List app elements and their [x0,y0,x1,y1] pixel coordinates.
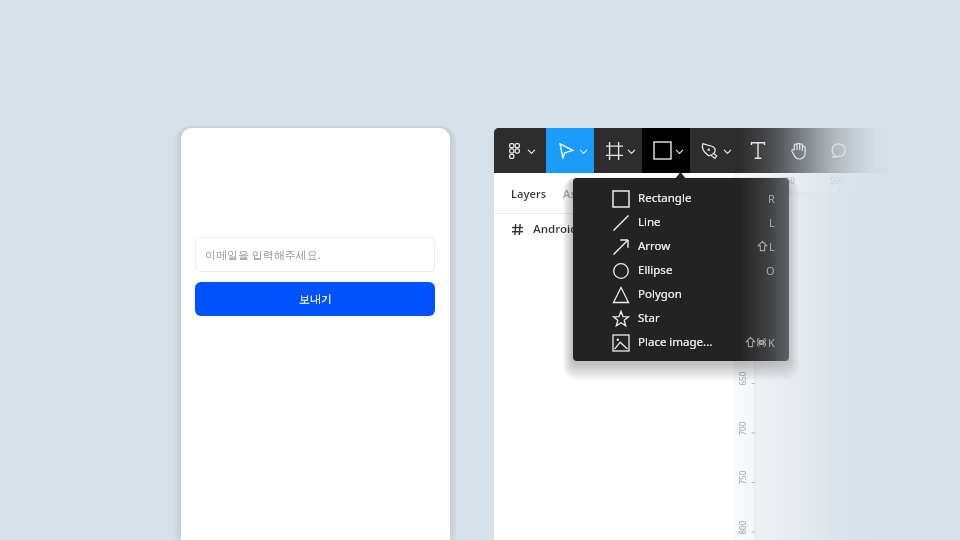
staticText: L [769,215,775,230]
staticText: 이메일을 입력해주세요. [205,247,321,262]
staticText: Layers [511,186,547,201]
button[interactable]: Assets [563,186,598,201]
staticText: Polygon [638,286,682,302]
button[interactable]: Place image... [573,330,789,354]
button[interactable]: 이메일을 입력해주세요. [195,237,435,272]
button[interactable]: Star [573,306,789,330]
button[interactable]: Shape tools [642,128,690,173]
staticText: K [768,335,775,350]
button[interactable]: Android Large [512,217,734,241]
staticText: Android Large [533,221,613,237]
button[interactable]: 보내기 [195,282,435,316]
button[interactable]: Frame tool [594,128,642,173]
button[interactable]: Main menu [494,128,546,173]
staticText: L [769,239,775,254]
staticText: 800 [736,520,747,534]
button[interactable]: Ellipse [573,258,789,282]
staticText: Line [638,214,661,230]
staticText: Ellipse [638,262,673,278]
button[interactable]: Move tool [546,128,594,173]
button[interactable]: Polygon [573,282,789,306]
staticText: 450 [781,175,795,186]
staticText: 700 [736,421,747,435]
button[interactable]: Line [573,210,789,234]
staticText: Place image... [638,334,713,350]
button[interactable]: Pen tool [690,128,738,173]
staticText: O [766,263,775,278]
staticText: 650 [736,371,747,385]
staticText: Rectangle [638,190,692,206]
button[interactable]: Rectangle [573,186,789,210]
button[interactable]: Hand tool [778,128,818,173]
staticText: 500 [830,175,844,186]
button[interactable]: Text tool [738,128,778,173]
staticText: Star [638,310,660,326]
staticText: 보내기 [299,292,332,306]
button[interactable]: Arrow [573,234,789,258]
staticText: 750 [736,470,747,484]
staticText: R [768,191,775,206]
button[interactable]: Layers [511,186,547,201]
staticText: Arrow [638,238,671,254]
staticText: Assets [563,186,598,201]
button[interactable]: Comment [818,128,858,173]
